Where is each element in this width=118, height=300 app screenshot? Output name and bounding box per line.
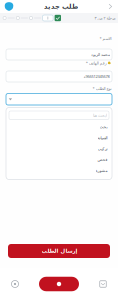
staticText: طلب جديد	[43, 3, 77, 10]
button[interactable]: الصيانة	[6, 132, 112, 143]
button[interactable]	[6, 93, 112, 105]
staticText: الاسم *	[99, 36, 111, 41]
button[interactable]: Logo	[2, 0, 16, 13]
staticText: فحص	[97, 157, 107, 162]
button[interactable]: فحص	[6, 154, 112, 165]
button[interactable]: Settings	[2, 268, 28, 300]
button[interactable]: Home	[39, 277, 79, 291]
staticText: محمد الزيود	[90, 52, 109, 57]
button[interactable]: مشورة	[6, 165, 112, 176]
staticText: رقم الهاتف *	[85, 60, 106, 66]
staticText: مرحلة ٢ من ٣	[94, 16, 115, 20]
staticText: مشورة	[95, 168, 107, 173]
staticText: تركيب	[97, 146, 107, 151]
button[interactable]: تركيب	[6, 143, 112, 154]
staticText: +966512345678	[83, 74, 109, 79]
button[interactable]: Back	[105, 0, 116, 13]
staticText: نوع الطلب *	[92, 86, 111, 91]
staticText: بحث	[99, 125, 107, 129]
button[interactable]: بحث	[6, 121, 112, 132]
staticText: إرسال الطلب	[41, 248, 77, 254]
button[interactable]: إرسال الطلب	[8, 244, 110, 258]
button[interactable]: Orders	[90, 268, 116, 300]
staticText: الصيانة	[97, 136, 107, 140]
staticText: ابحث هنا	[92, 113, 106, 117]
